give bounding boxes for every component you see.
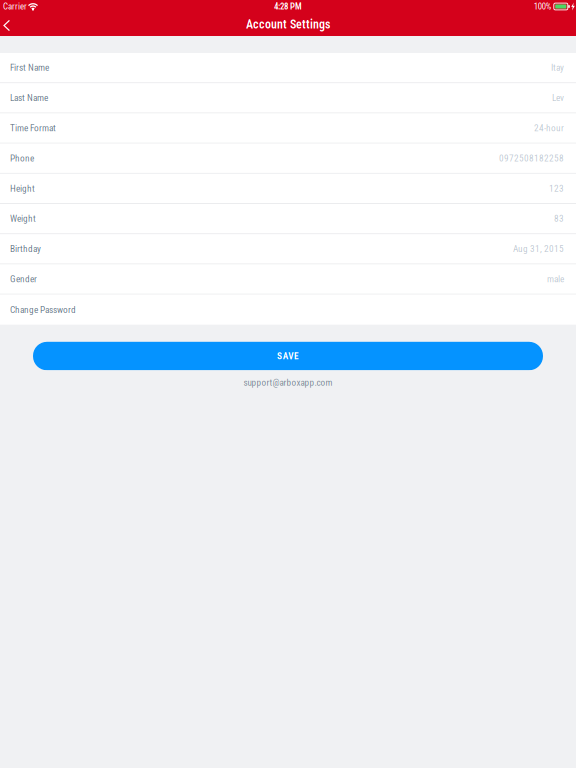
staticText: Last Name: [10, 92, 48, 103]
button[interactable]: Phone: [0, 144, 576, 174]
button[interactable]: Back: [0, 16, 22, 33]
button[interactable]: Change Password: [0, 295, 576, 325]
staticText: male: [547, 274, 564, 284]
staticText: Lev: [552, 92, 564, 103]
staticText: SAVE: [277, 351, 299, 361]
staticText: First Name: [10, 62, 49, 73]
staticText: Account Settings: [246, 17, 330, 32]
staticText: Aug 31, 2015: [513, 243, 564, 254]
staticText: Height: [10, 183, 35, 194]
button[interactable]: Time Format: [0, 113, 576, 144]
button[interactable]: SAVE: [33, 342, 543, 370]
staticText: Time Format: [10, 123, 56, 133]
staticText: Phone: [10, 153, 34, 164]
staticText: Weight: [10, 213, 36, 224]
staticText: support@arboxapp.com: [243, 377, 332, 388]
staticText: Gender: [10, 274, 37, 284]
button[interactable]: Gender: [0, 264, 576, 295]
staticText: 83: [554, 213, 564, 224]
staticText: Carrier: [3, 1, 27, 12]
staticText: 123: [549, 183, 564, 194]
staticText: Birthday: [10, 243, 41, 254]
staticText: Change Password: [10, 304, 76, 315]
staticText: 24-hour: [534, 123, 564, 133]
staticText: 0972508182258: [499, 153, 564, 164]
button[interactable]: First Name: [0, 53, 576, 83]
staticText: 100%: [534, 1, 552, 12]
staticText: 4:28 PM: [274, 1, 302, 12]
button[interactable]: Last Name: [0, 83, 576, 113]
button[interactable]: support@arboxapp.com: [243, 377, 332, 388]
button[interactable]: Weight: [0, 204, 576, 234]
staticText: Itay: [551, 62, 564, 73]
button[interactable]: Birthday: [0, 234, 576, 264]
button[interactable]: Height: [0, 174, 576, 204]
